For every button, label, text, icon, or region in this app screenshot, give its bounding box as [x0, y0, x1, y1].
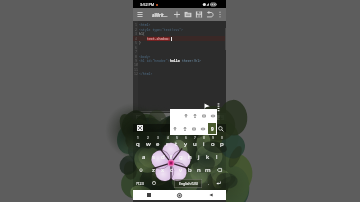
staticText: 7: [194, 136, 196, 140]
staticText: d: [161, 153, 165, 161]
button[interactable]: 7: [190, 136, 199, 140]
staticText: 11: [134, 68, 138, 72]
staticText: 6: [135, 46, 137, 50]
button[interactable]: y: [181, 139, 190, 149]
button[interactable]: Move: [217, 115, 224, 122]
button[interactable]: Undo: [206, 8, 214, 21]
button[interactable]: s: [149, 152, 158, 162]
button[interactable]: Shift: [133, 165, 148, 175]
staticText: r: [166, 140, 169, 148]
staticText: <html>: [139, 23, 151, 27]
button[interactable]: aWrit…: [152, 12, 168, 18]
button[interactable]: 1: [133, 136, 143, 140]
button[interactable]: More options: [217, 8, 223, 21]
button[interactable]: x: [158, 165, 167, 175]
button[interactable]: k: [203, 152, 212, 162]
staticText: l: [216, 153, 218, 161]
button[interactable]: m: [203, 165, 212, 175]
button[interactable]: Symbol: [181, 109, 190, 122]
staticText: hello: [170, 59, 180, 63]
button[interactable]: i: [199, 139, 208, 149]
button[interactable]: 0: [217, 136, 226, 140]
button[interactable]: 2: [143, 136, 153, 140]
button[interactable]: u: [190, 139, 199, 149]
staticText: 2: [135, 28, 137, 32]
staticText: 3:52 PM: [140, 2, 155, 7]
button[interactable]: Symbol: [170, 122, 180, 135]
staticText: q: [136, 140, 140, 148]
button[interactable]: Symbol: [180, 122, 189, 135]
button[interactable]: Back: [195, 190, 226, 200]
button[interactable]: Minimize: [160, 116, 166, 122]
button[interactable]: Enter: [215, 178, 222, 188]
staticText: j: [198, 153, 200, 161]
button[interactable]: o: [208, 139, 217, 149]
button[interactable]: Symbol: [189, 122, 198, 135]
button[interactable]: 3: [153, 136, 163, 140]
staticText: t: [175, 140, 178, 148]
button[interactable]: Keyboard layout: [136, 115, 143, 122]
button[interactable]: a: [139, 152, 149, 162]
button[interactable]: l: [212, 152, 221, 162]
staticText: x: [161, 166, 165, 174]
staticText: 4: [167, 136, 169, 140]
staticText: text-shadow:: [147, 37, 170, 41]
button[interactable]: g: [176, 152, 185, 162]
button[interactable]: Open folder: [184, 8, 192, 21]
button[interactable]: 8: [199, 136, 208, 140]
button[interactable]: Save: [195, 8, 203, 21]
button[interactable]: Navigation menu: [136, 8, 144, 21]
staticText: z: [152, 166, 155, 174]
button[interactable]: 4: [163, 136, 172, 140]
button[interactable]: Period: [205, 178, 212, 188]
button[interactable]: New file: [173, 8, 181, 21]
staticText: 1: [135, 23, 137, 27]
button[interactable]: English (US): [174, 179, 202, 188]
staticText: <style type="text/css">: [139, 28, 183, 32]
button[interactable]: f: [167, 152, 176, 162]
staticText: n: [197, 166, 201, 174]
staticText: i: [203, 140, 205, 148]
button[interactable]: Symbol: [198, 122, 207, 135]
button[interactable]: j: [194, 152, 203, 162]
button[interactable]: r: [163, 139, 172, 149]
button[interactable]: v: [176, 165, 185, 175]
staticText: 9: [211, 126, 214, 132]
staticText: 10: [134, 63, 138, 67]
staticText: p: [220, 140, 224, 148]
staticText: 12: [134, 72, 138, 76]
button[interactable]: b: [185, 165, 194, 175]
button[interactable]: h: [185, 152, 194, 162]
button[interactable]: Symbol: [208, 109, 217, 122]
button[interactable]: z: [148, 165, 158, 175]
button[interactable]: More: [150, 116, 156, 122]
button[interactable]: w: [143, 139, 153, 149]
button[interactable]: 5: [172, 136, 181, 140]
staticText: g: [179, 153, 183, 161]
button[interactable]: c: [167, 165, 176, 175]
button[interactable]: Backspace: [212, 165, 226, 175]
button[interactable]: Sticker: [137, 125, 143, 131]
staticText: o: [211, 140, 215, 148]
button[interactable]: d: [158, 152, 167, 162]
button[interactable]: e: [153, 139, 163, 149]
staticText: 5: [176, 136, 178, 140]
staticText: v: [179, 166, 183, 174]
button[interactable]: Emoji: [150, 178, 157, 188]
button[interactable]: q: [133, 139, 143, 149]
button[interactable]: Selected symbol: [208, 123, 216, 134]
button[interactable]: ?123: [135, 178, 145, 188]
button[interactable]: p: [217, 139, 226, 149]
staticText: h: [188, 153, 192, 161]
button[interactable]: Symbol: [199, 109, 208, 122]
staticText: 1: [137, 136, 139, 140]
button[interactable]: Symbol: [190, 109, 199, 122]
button[interactable]: n: [194, 165, 203, 175]
button[interactable]: 9: [208, 136, 217, 140]
button[interactable]: Recents: [133, 190, 164, 200]
staticText: }: [139, 41, 141, 45]
button[interactable]: Search: [218, 126, 224, 132]
button[interactable]: t: [172, 139, 181, 149]
button[interactable]: Home: [164, 190, 195, 200]
button[interactable]: 6: [181, 136, 190, 140]
